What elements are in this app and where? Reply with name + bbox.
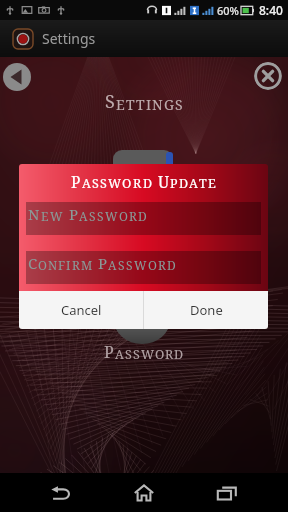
button[interactable]: Cancel [19, 291, 143, 329]
staticText: A [115, 346, 125, 363]
staticText: O [38, 257, 48, 273]
staticText: E [116, 95, 126, 114]
staticText: Settings [42, 29, 96, 48]
staticText: T [199, 175, 208, 192]
staticText: S [105, 89, 116, 114]
staticText: O [155, 346, 165, 363]
button[interactable]: N [26, 202, 261, 235]
staticText: O [148, 257, 158, 273]
button[interactable]: Recent apps [205, 473, 249, 512]
staticText: D [167, 257, 177, 273]
button[interactable]: Home [122, 473, 166, 512]
staticText: T [126, 95, 136, 114]
staticText: C [28, 253, 38, 273]
staticText: S [133, 346, 141, 363]
staticText: U [158, 171, 170, 192]
staticText: N [152, 95, 164, 114]
staticText: 8:40 [259, 2, 283, 18]
staticText: A [79, 208, 89, 224]
staticText: Done [190, 301, 223, 319]
staticText: S [100, 175, 108, 192]
button[interactable]: Done [144, 291, 268, 329]
staticText: S [89, 208, 97, 224]
staticText: W [134, 257, 148, 273]
staticText: D [179, 175, 189, 192]
staticText: R [158, 257, 167, 273]
staticText: T [136, 95, 146, 114]
staticText: W [50, 208, 64, 224]
staticText: S [175, 95, 184, 114]
staticText: A [189, 175, 199, 192]
staticText: S [118, 257, 126, 273]
staticText: D [174, 346, 184, 363]
staticText: S [126, 257, 134, 273]
staticText: O [122, 175, 133, 192]
staticText: D [138, 208, 148, 224]
staticText: W [108, 175, 122, 192]
button[interactable]: C [26, 251, 261, 284]
staticText: M [81, 257, 93, 273]
staticText: S [97, 208, 105, 224]
staticText: P [71, 171, 82, 192]
staticText: P [69, 204, 79, 224]
staticText: D [143, 175, 153, 192]
button[interactable]: Close [254, 62, 282, 90]
staticText: A [82, 175, 92, 192]
staticText: N [48, 257, 58, 273]
staticText: G [164, 95, 175, 114]
staticText: R [129, 208, 138, 224]
staticText: N [28, 204, 41, 224]
staticText: R [165, 346, 174, 363]
button[interactable]: Back [39, 473, 83, 512]
staticText: A [108, 257, 118, 273]
staticText: E [208, 175, 217, 192]
staticText: R [133, 175, 143, 192]
staticText: O [119, 208, 129, 224]
staticText: I [146, 95, 152, 114]
staticText: W [141, 346, 155, 363]
staticText: F [58, 257, 66, 273]
staticText: R [72, 257, 81, 273]
staticText: E [41, 208, 50, 224]
staticText: S [125, 346, 133, 363]
staticText: P [98, 253, 108, 273]
staticText: W [105, 208, 119, 224]
staticText: 60% [217, 3, 239, 18]
staticText: S [92, 175, 100, 192]
staticText: P [170, 175, 179, 192]
staticText: Cancel [61, 301, 102, 319]
button[interactable]: Back [3, 63, 31, 91]
staticText: I [66, 257, 72, 273]
staticText: P [104, 341, 115, 363]
